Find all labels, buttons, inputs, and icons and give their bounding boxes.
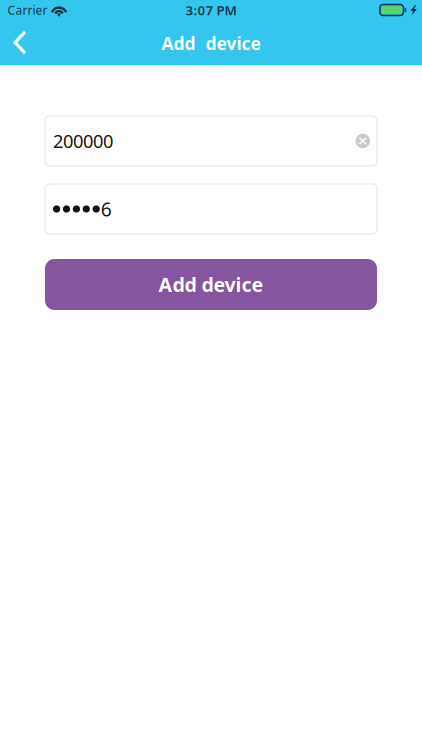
staticText: Carrier xyxy=(7,2,47,18)
staticText: 6 xyxy=(101,196,112,222)
button[interactable]: Back xyxy=(0,20,43,65)
staticText: Add device xyxy=(158,271,263,298)
staticText: 3:07 PM xyxy=(185,1,236,19)
button[interactable]: Clear text xyxy=(351,129,375,153)
staticText: 200000 xyxy=(53,129,113,153)
button[interactable]: Add device xyxy=(45,259,377,310)
staticText: Add device xyxy=(161,31,260,55)
